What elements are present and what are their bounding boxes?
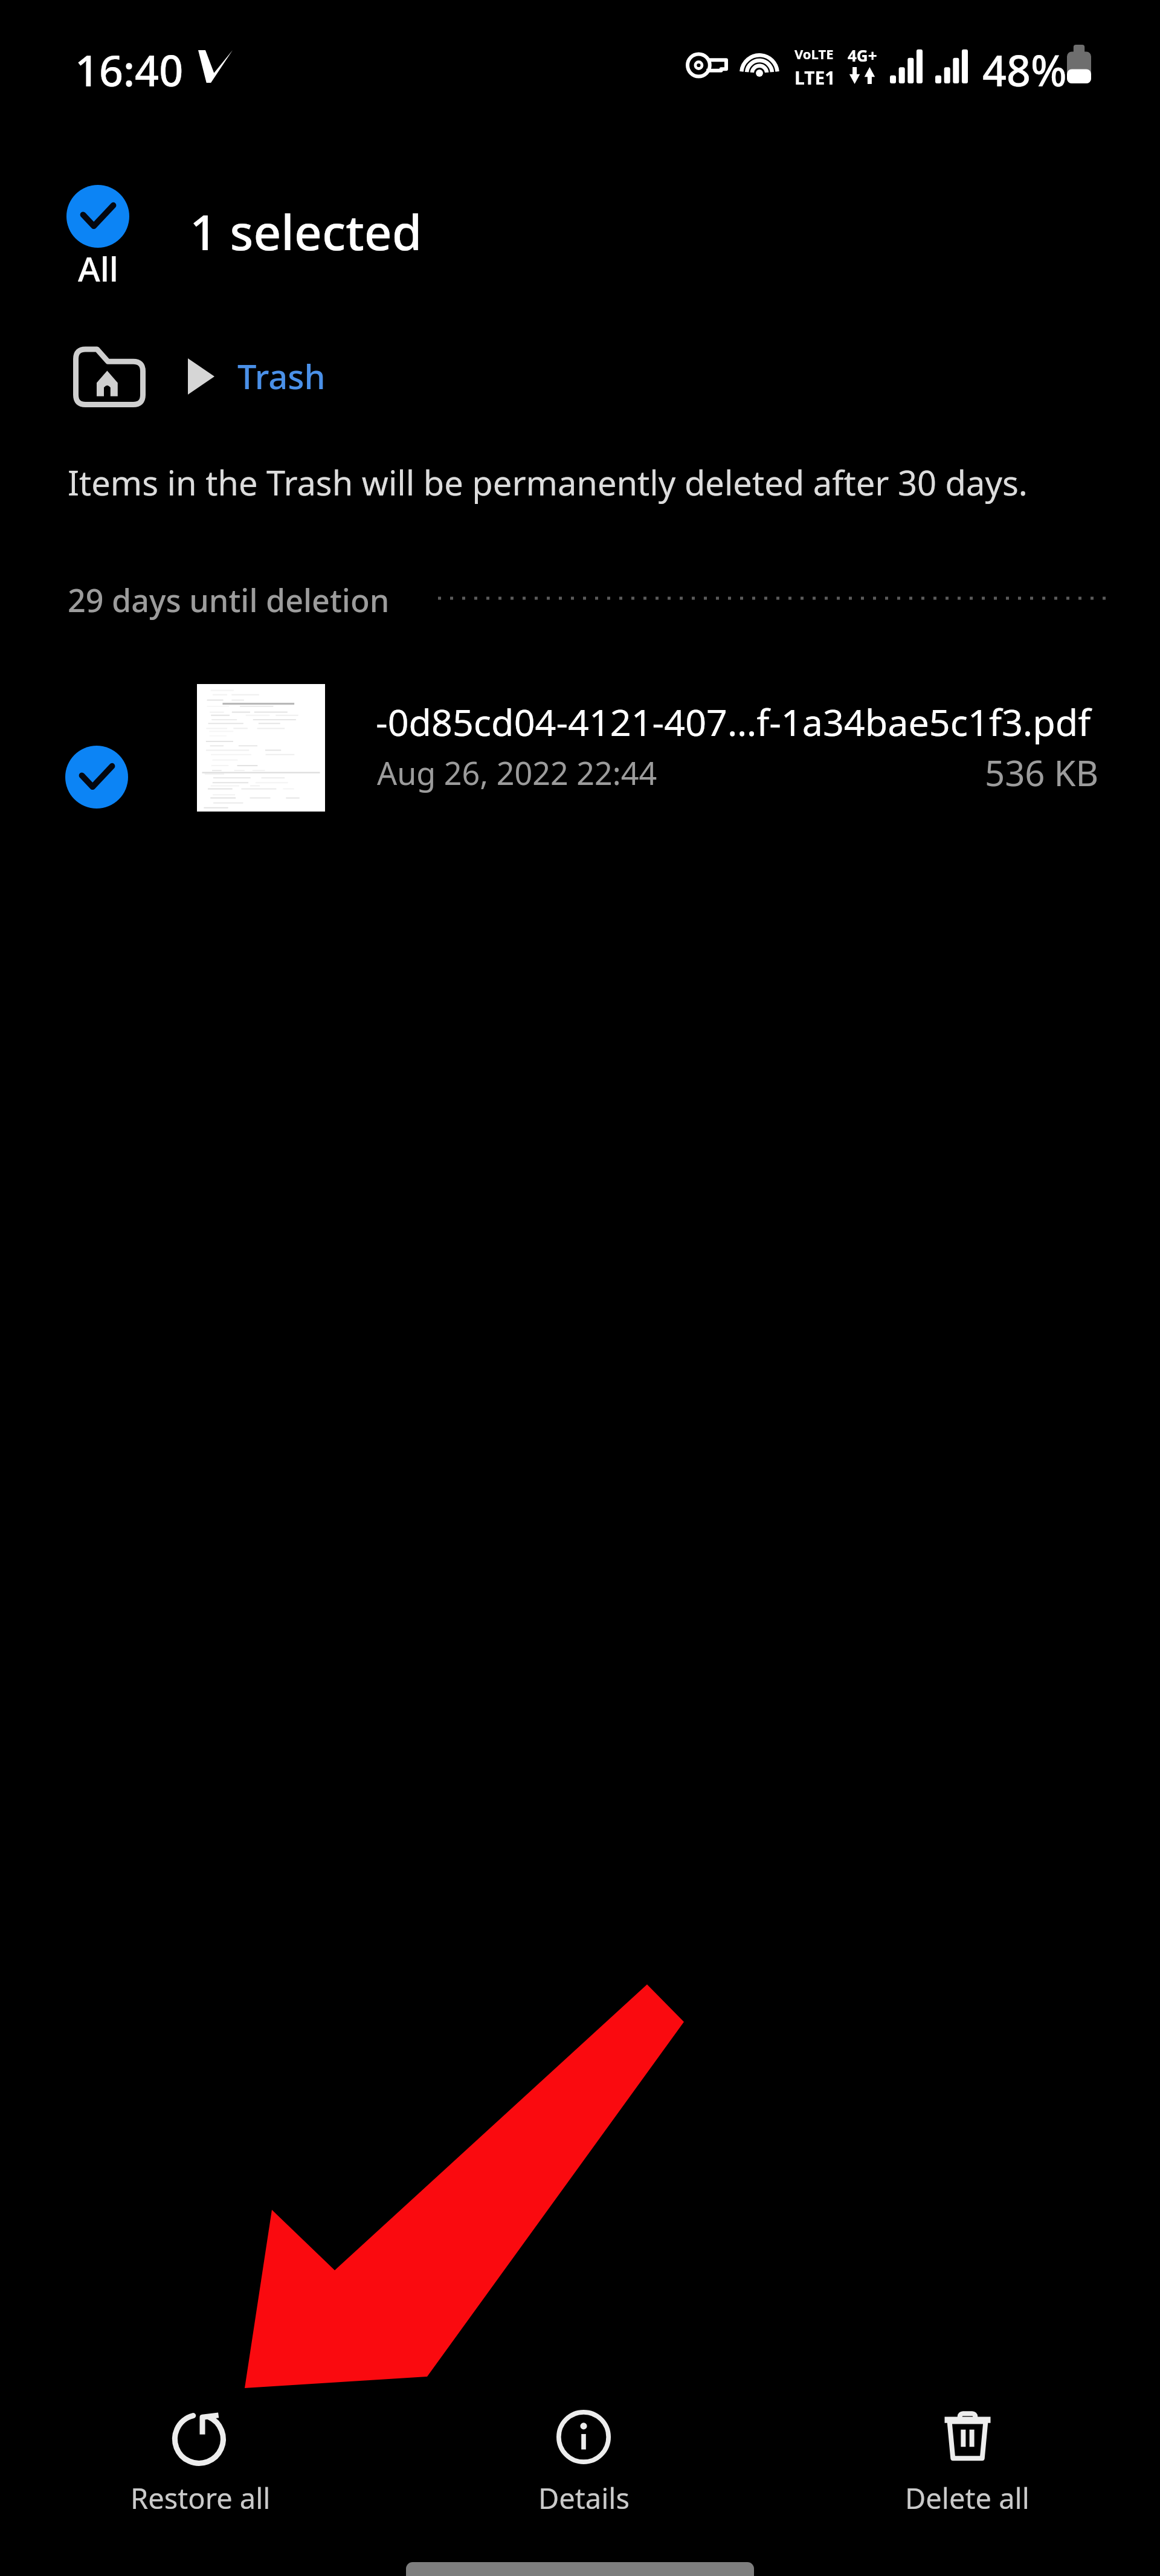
button[interactable]: Restore all [80,2411,321,2517]
staticText: 4G+ [848,45,877,66]
staticText: 1 selected [190,198,422,264]
staticText: All [78,245,118,291]
button[interactable]: All [51,175,145,296]
button[interactable]: Home folder [65,338,153,415]
staticText: 16:40 [75,41,184,98]
button[interactable]: Delete all [846,2411,1088,2517]
staticText: Delete all [905,2479,1029,2517]
button[interactable]: Details [463,2411,704,2517]
button[interactable]: Trash [227,346,337,406]
staticText: 536 KB [985,749,1099,796]
staticText: LTE1 [794,65,836,90]
staticText: Aug 26, 2022 22:44 [377,751,657,794]
staticText: Restore all [130,2479,271,2517]
staticText: VoLTE [794,45,834,63]
staticText: 48% [982,41,1067,98]
button[interactable]: -0d85cd04-4121-407…f-1a34bae5c1f3.pdf [0,662,1160,891]
staticText: 29 days until deletion [68,578,390,621]
staticText: -0d85cd04-4121-407…f-1a34bae5c1f3.pdf [376,697,1091,747]
staticText: Trash [237,353,326,399]
staticText: Details [538,2479,630,2517]
staticText: Items in the Trash will be permanently d… [68,459,1028,505]
